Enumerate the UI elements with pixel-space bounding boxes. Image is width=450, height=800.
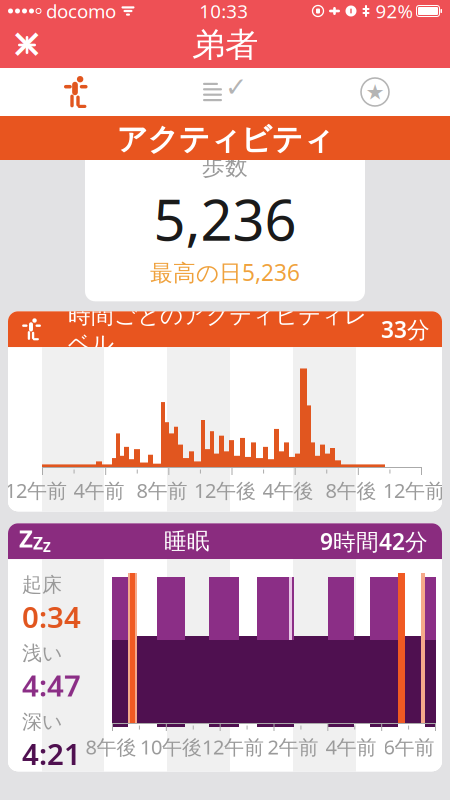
staticText: 6午前 bbox=[383, 733, 434, 760]
button[interactable]: Achievements bbox=[300, 69, 450, 115]
staticText: 4午後 bbox=[262, 477, 313, 504]
staticText: 起床 bbox=[22, 572, 62, 597]
staticText: 4午前 bbox=[325, 733, 376, 760]
staticText: ★ bbox=[365, 80, 384, 104]
button[interactable]: Activity bbox=[0, 69, 150, 115]
staticText: 4午前 bbox=[73, 477, 124, 504]
staticText: 浅い bbox=[22, 641, 62, 666]
staticText: 8午前 bbox=[136, 477, 187, 504]
staticText: 歩数 bbox=[202, 153, 248, 181]
staticText: 33分 bbox=[381, 314, 430, 344]
staticText: 弟者 bbox=[192, 24, 258, 65]
staticText: 9時間42分 bbox=[320, 526, 428, 556]
staticText: 12午前 bbox=[202, 733, 264, 760]
staticText: 睡眠 bbox=[164, 527, 210, 555]
staticText: 4:21 bbox=[22, 734, 81, 773]
staticText: 92% bbox=[375, 0, 413, 23]
staticText: 10午後 bbox=[140, 733, 202, 760]
staticText: 12午後 bbox=[194, 477, 256, 504]
staticText: Z bbox=[19, 522, 33, 554]
staticText: 10:33 bbox=[199, 0, 248, 23]
staticText: 時間ごとのアクティビティレベル bbox=[68, 301, 367, 357]
staticText: 5,236 bbox=[153, 182, 296, 256]
staticText: Z bbox=[43, 538, 51, 556]
staticText: 2午前 bbox=[267, 733, 318, 760]
staticText: 8午後 bbox=[325, 477, 376, 504]
button[interactable]: Log bbox=[150, 69, 300, 115]
staticText: 最高の日5,236 bbox=[150, 257, 300, 287]
staticText: 0:34 bbox=[22, 597, 81, 636]
staticText: 12午前 bbox=[383, 477, 445, 504]
staticText: 深い bbox=[22, 710, 62, 734]
button[interactable]: Close bbox=[0, 22, 54, 68]
staticText: 12午前 bbox=[5, 477, 67, 504]
staticText: docomo bbox=[46, 0, 116, 23]
staticText: ✓ bbox=[225, 72, 247, 102]
staticText: Z bbox=[33, 531, 43, 554]
staticText: 4:47 bbox=[22, 666, 81, 705]
staticText: アクティビティ bbox=[116, 121, 333, 158]
staticText: 8午後 bbox=[85, 733, 136, 760]
staticText: ✕ bbox=[10, 22, 44, 68]
